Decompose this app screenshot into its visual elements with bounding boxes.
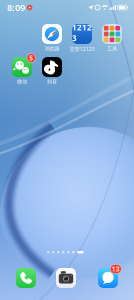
button[interactable]: Phone — [16, 268, 36, 288]
staticText: 5 — [29, 54, 33, 62]
staticText: 12123 — [72, 22, 92, 43]
button[interactable]: 12123 — [67, 24, 97, 53]
staticText: 交管12123 — [69, 45, 94, 53]
button[interactable]: 浏览器 — [37, 24, 67, 52]
button[interactable]: 5 — [7, 57, 37, 85]
staticText: 浏览器 — [44, 45, 59, 52]
button[interactable]: 抖音 — [37, 57, 67, 85]
staticText: 8:09 — [7, 1, 25, 14]
button[interactable]: 工具 — [97, 24, 127, 52]
staticText: 工具 — [107, 45, 117, 52]
staticText: 抖音 — [47, 78, 57, 85]
staticText: 13 — [112, 265, 120, 273]
button[interactable]: Messages — [98, 268, 118, 288]
button[interactable]: Camera — [56, 268, 76, 288]
staticText: 微信 — [17, 78, 27, 85]
